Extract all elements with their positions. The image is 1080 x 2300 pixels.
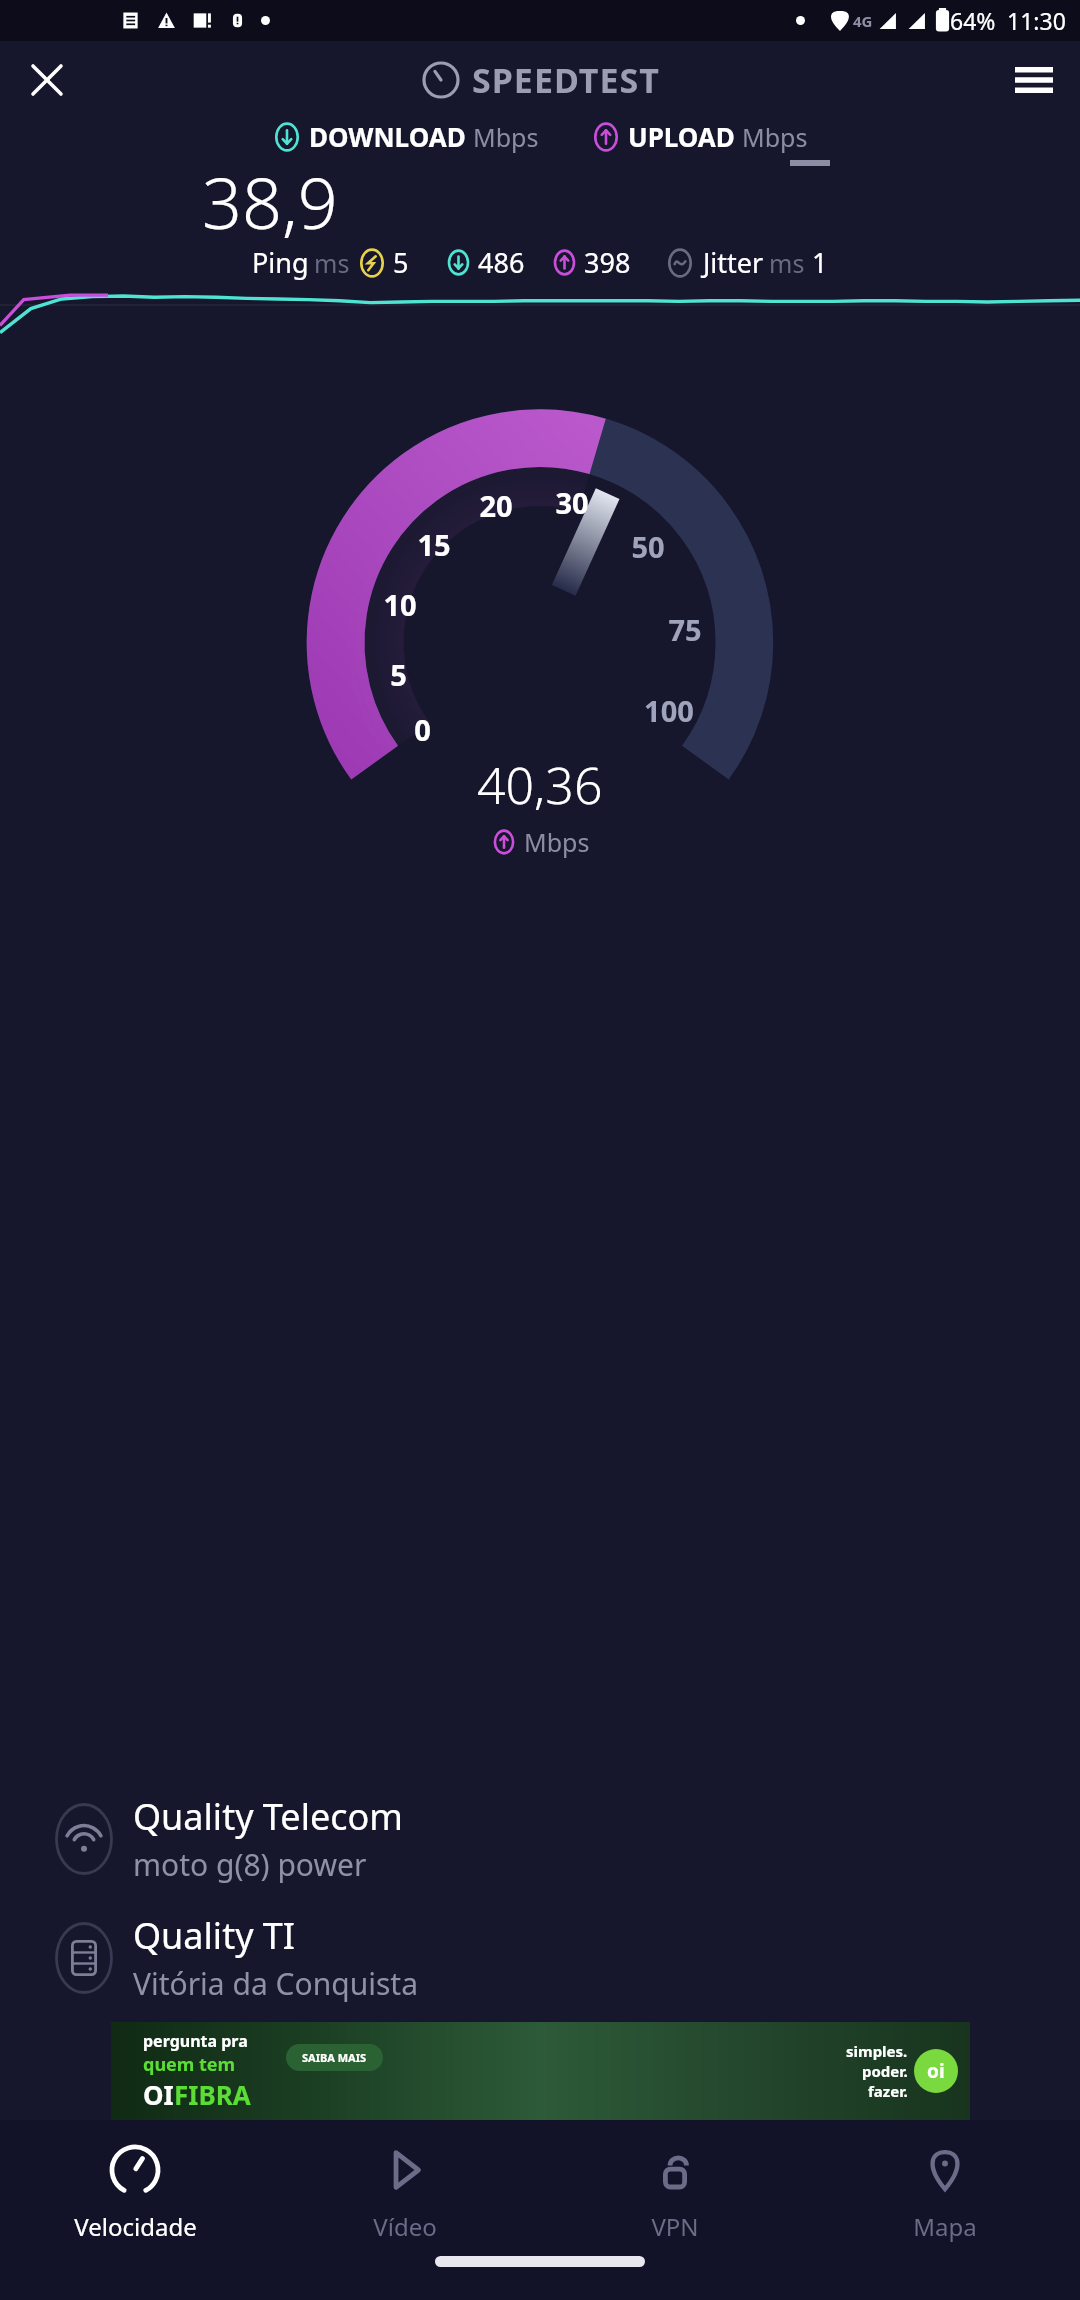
staticText: SPEEDTEST bbox=[472, 57, 660, 103]
button[interactable]: Close bbox=[20, 53, 74, 107]
staticText: 50 bbox=[631, 527, 665, 566]
staticText: 10 bbox=[383, 585, 417, 624]
button[interactable]: Vídeo bbox=[270, 2120, 540, 2244]
staticText: Velocidade bbox=[74, 2210, 197, 2243]
staticText: 40,36 bbox=[477, 751, 603, 819]
staticText: oi bbox=[927, 2058, 945, 2084]
staticText: ms bbox=[769, 246, 805, 280]
staticText: 11:30 bbox=[1007, 5, 1066, 36]
staticText: Mbps bbox=[473, 120, 539, 154]
staticText: 4G bbox=[853, 11, 873, 31]
staticText: 1 bbox=[812, 244, 828, 281]
staticText: DOWNLOAD bbox=[309, 119, 466, 154]
staticText: 398 bbox=[584, 244, 631, 281]
staticText: pergunta pra bbox=[143, 2030, 248, 2052]
staticText: 5 bbox=[390, 655, 407, 694]
staticText: Quality TI bbox=[133, 1911, 296, 1960]
staticText: 5 bbox=[393, 244, 409, 281]
staticText: poder. bbox=[862, 2061, 908, 2081]
staticText: VPN bbox=[651, 2210, 699, 2243]
staticText: Quality Telecom bbox=[133, 1792, 403, 1841]
staticText: Vídeo bbox=[373, 2210, 437, 2243]
staticText: UPLOAD bbox=[628, 119, 735, 154]
staticText: 0 bbox=[414, 710, 431, 749]
staticText: 38,9 bbox=[202, 154, 338, 244]
staticText: Vitória da Conquista bbox=[133, 1963, 418, 2004]
staticText: 75 bbox=[668, 610, 702, 649]
button[interactable]: Quality TI bbox=[0, 1905, 1080, 2010]
staticText: OI bbox=[143, 2077, 174, 2112]
staticText: 64% bbox=[950, 5, 996, 36]
staticText: Mapa bbox=[913, 2210, 977, 2243]
staticText: ms bbox=[314, 246, 350, 280]
button[interactable]: Menu bbox=[1008, 54, 1060, 106]
staticText: 15 bbox=[417, 525, 451, 564]
staticText: 30 bbox=[555, 483, 589, 522]
staticText: simples. bbox=[846, 2041, 908, 2061]
staticText: Ping bbox=[252, 244, 309, 281]
staticText: 20 bbox=[479, 486, 513, 525]
staticText: Jitter bbox=[703, 244, 764, 281]
button[interactable]: Mapa bbox=[810, 2120, 1080, 2244]
button[interactable]: Velocidade bbox=[0, 2120, 270, 2244]
staticText: 100 bbox=[644, 691, 694, 730]
staticText: Mbps bbox=[742, 120, 808, 154]
staticText: moto g(8) power bbox=[133, 1844, 367, 1885]
staticText: 486 bbox=[478, 244, 525, 281]
staticText: FIBRA bbox=[174, 2077, 251, 2112]
staticText: quem tem bbox=[143, 2052, 236, 2077]
button[interactable]: Advertisement bbox=[111, 2022, 970, 2120]
staticText: fazer. bbox=[868, 2081, 908, 2101]
button[interactable]: VPN bbox=[540, 2120, 810, 2244]
staticText: SAIBA MAIS bbox=[302, 2050, 367, 2065]
staticText: Mbps bbox=[524, 825, 590, 859]
button[interactable]: Quality Telecom bbox=[0, 1786, 1080, 1891]
